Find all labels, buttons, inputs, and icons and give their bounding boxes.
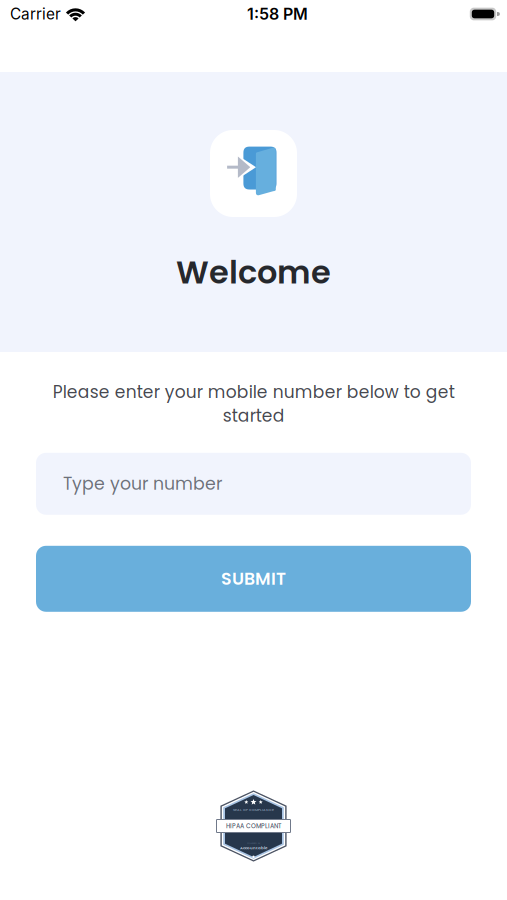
staticText: Accountable (240, 845, 267, 851)
staticText: POWERED BY (247, 841, 260, 844)
staticText: Type your number (63, 472, 222, 496)
staticText: HIPAA COMPLIANT (226, 822, 281, 830)
staticText: Welcome (176, 250, 331, 295)
staticText: Please enter your mobile number below to… (52, 380, 454, 428)
staticText: 1:58 PM (247, 4, 308, 24)
staticText: SEAL OF COMPLIANCE (233, 807, 274, 812)
button[interactable]: SUBMIT (36, 546, 471, 612)
staticText: Carrier (10, 5, 61, 23)
staticText: SUBMIT (221, 567, 286, 591)
